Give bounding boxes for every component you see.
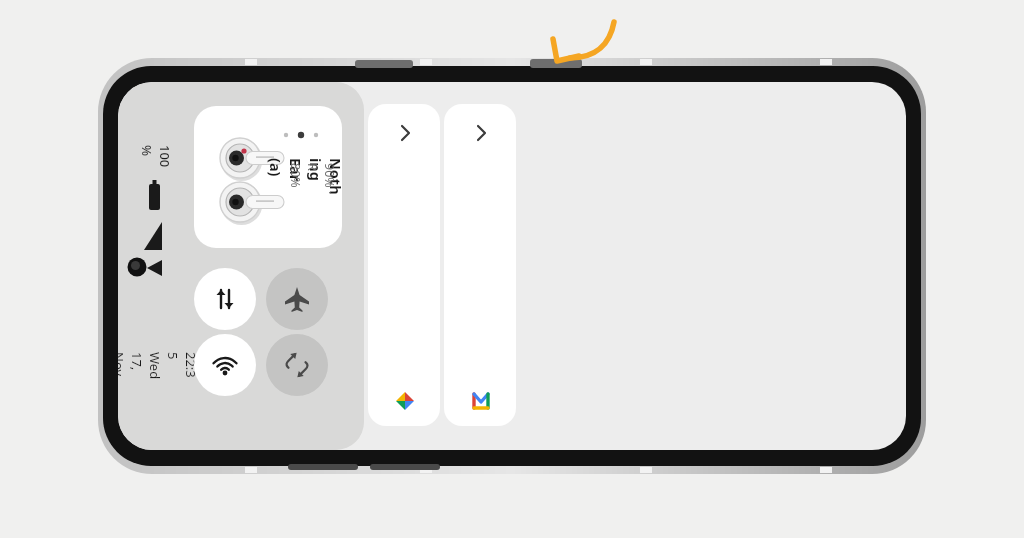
staticText: L 90% · R 80% bbox=[287, 163, 342, 197]
button[interactable]: Wireless bbox=[194, 334, 256, 396]
button[interactable]: Airplane mode bbox=[266, 268, 328, 330]
staticText: 100% bbox=[138, 145, 174, 169]
other: Expand bbox=[474, 122, 490, 138]
button[interactable]: Auto rotate bbox=[266, 334, 328, 396]
button[interactable]: Nothing Ear (a) bbox=[194, 106, 342, 248]
button[interactable]: Expand bbox=[368, 104, 440, 426]
button[interactable]: Data bbox=[194, 268, 256, 330]
staticText: Nothing Ear (a) bbox=[266, 158, 342, 198]
staticText: 22:35 Wed 17, Nov bbox=[118, 352, 200, 382]
button[interactable]: Expand bbox=[444, 104, 516, 426]
other: Expand bbox=[398, 122, 414, 138]
